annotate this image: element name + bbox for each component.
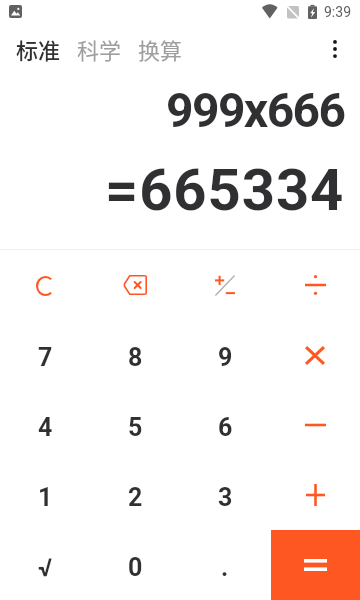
button[interactable]: 4: [0, 390, 90, 460]
staticText: 4: [38, 413, 53, 442]
staticText: 换算: [138, 33, 183, 65]
button[interactable]: 0: [90, 530, 180, 600]
staticText: =665334: [105, 156, 345, 224]
staticText: 3: [218, 483, 233, 512]
button[interactable]: Divide: [270, 250, 360, 320]
button[interactable]: 8: [90, 320, 180, 390]
staticText: 9: [218, 343, 233, 372]
staticText: 6: [218, 413, 233, 442]
button[interactable]: 1: [0, 460, 90, 530]
staticText: 2: [128, 483, 143, 512]
button[interactable]: 标准: [8, 25, 69, 73]
button[interactable]: Equals: [271, 530, 360, 600]
button[interactable]: 3: [180, 460, 270, 530]
staticText: 1: [38, 483, 53, 512]
button[interactable]: More options: [312, 25, 360, 73]
button[interactable]: 2: [90, 460, 180, 530]
button[interactable]: Backspace: [90, 250, 180, 320]
button[interactable]: .: [180, 530, 270, 600]
staticText: 8: [128, 343, 143, 372]
staticText: 科学: [77, 33, 122, 65]
button[interactable]: Plus: [270, 460, 360, 530]
staticText: 标准: [16, 33, 61, 65]
staticText: √: [38, 553, 52, 582]
button[interactable]: Multiply: [270, 320, 360, 390]
button[interactable]: Clear: [0, 250, 90, 320]
button[interactable]: √: [0, 530, 90, 600]
staticText: 999x666: [166, 82, 345, 138]
staticText: 7: [38, 343, 53, 372]
staticText: 0: [128, 553, 143, 582]
button[interactable]: 科学: [69, 25, 130, 73]
button[interactable]: 5: [90, 390, 180, 460]
staticText: .: [221, 553, 229, 582]
button[interactable]: 换算: [130, 25, 191, 73]
staticText: 5: [128, 413, 143, 442]
staticText: 9:39: [324, 4, 351, 20]
button[interactable]: 9: [180, 320, 270, 390]
button[interactable]: Minus: [270, 390, 360, 460]
button[interactable]: Plus minus: [180, 250, 270, 320]
button[interactable]: 7: [0, 320, 90, 390]
button[interactable]: 6: [180, 390, 270, 460]
